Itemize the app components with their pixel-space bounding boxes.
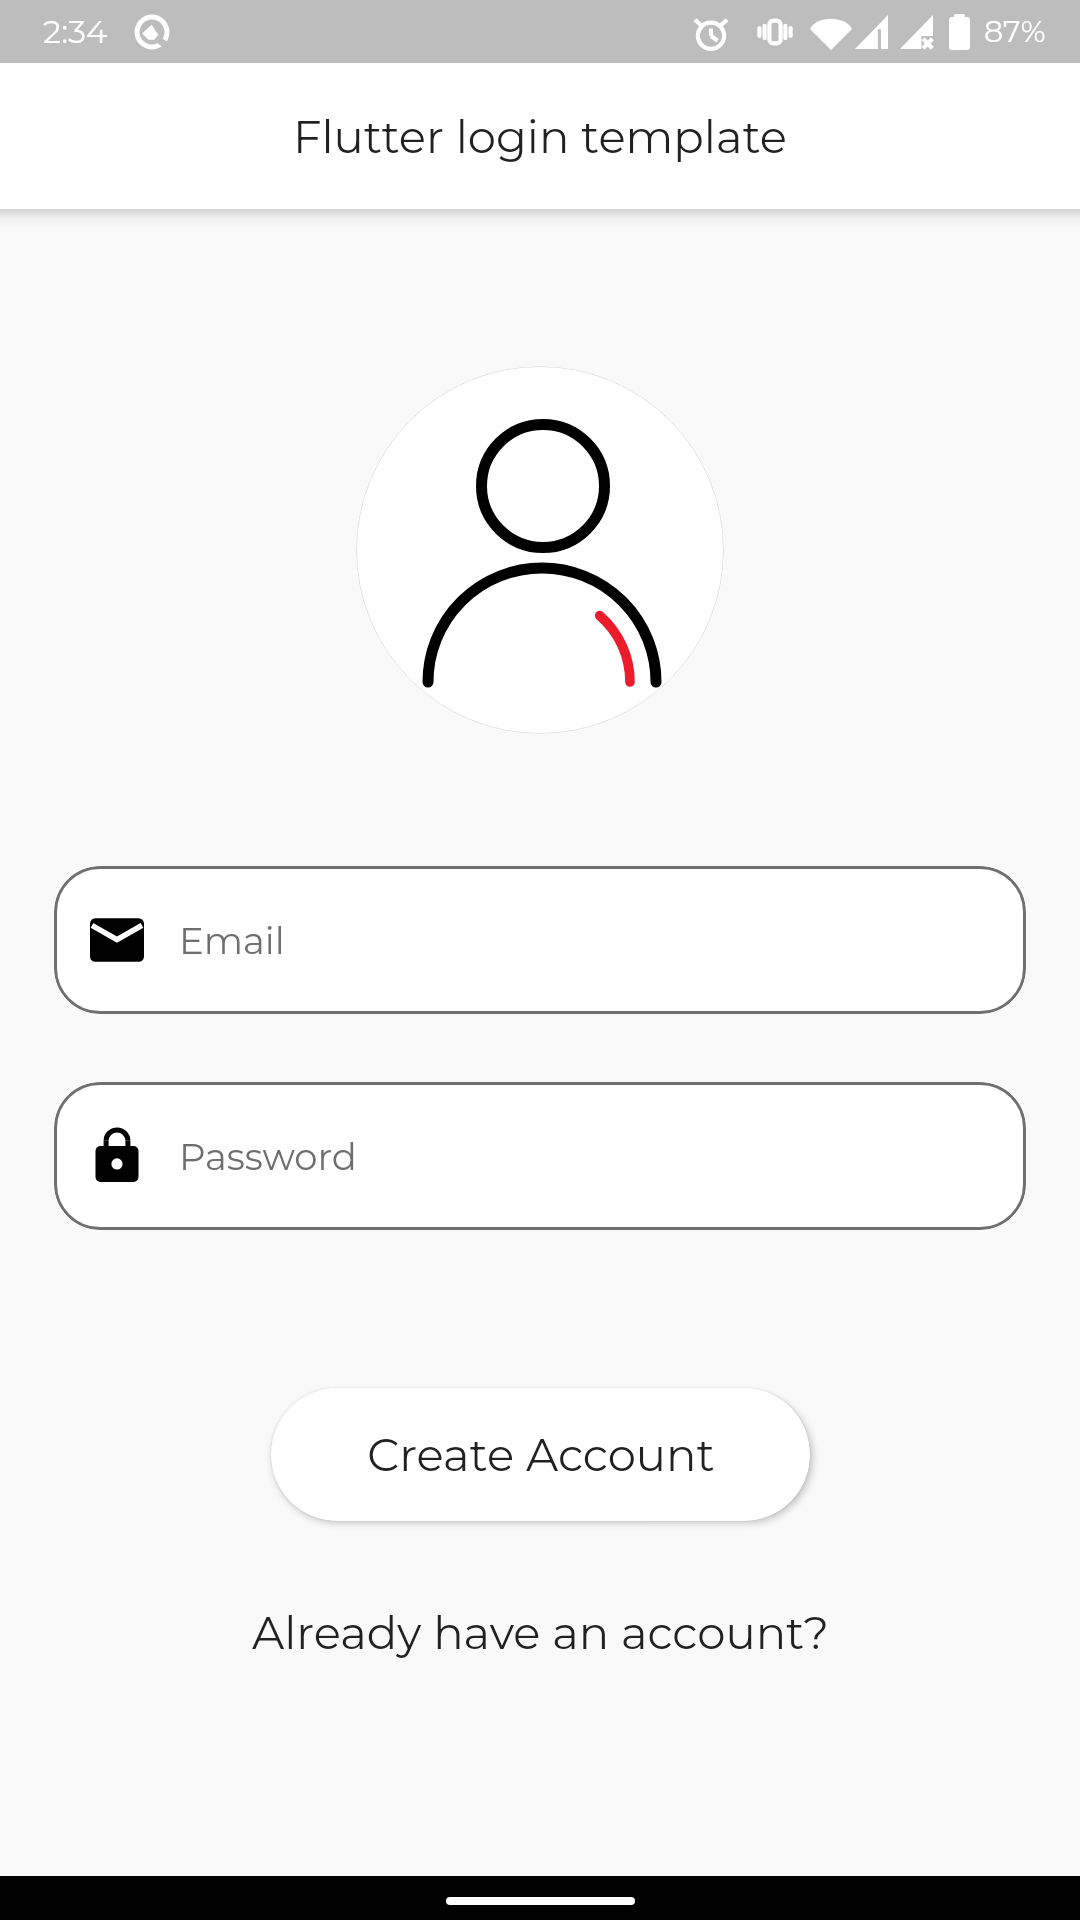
button[interactable]: Already have an account? <box>242 1593 839 1672</box>
staticText: Create Account <box>367 1427 715 1482</box>
staticText: Password <box>179 1134 357 1179</box>
button[interactable]: Email <box>54 866 1026 1014</box>
button[interactable]: Create Account <box>271 1388 810 1521</box>
button[interactable]: Home <box>446 1897 635 1905</box>
button[interactable]: Profile picture <box>356 366 724 734</box>
other: Location disabled <box>134 14 170 50</box>
staticText: Flutter login template <box>293 109 787 164</box>
staticText: 2:34 <box>43 12 108 51</box>
staticText: Email <box>179 918 285 963</box>
staticText: Already have an account? <box>252 1605 829 1660</box>
button[interactable]: Password <box>54 1082 1026 1230</box>
staticText: 87% <box>984 13 1046 50</box>
